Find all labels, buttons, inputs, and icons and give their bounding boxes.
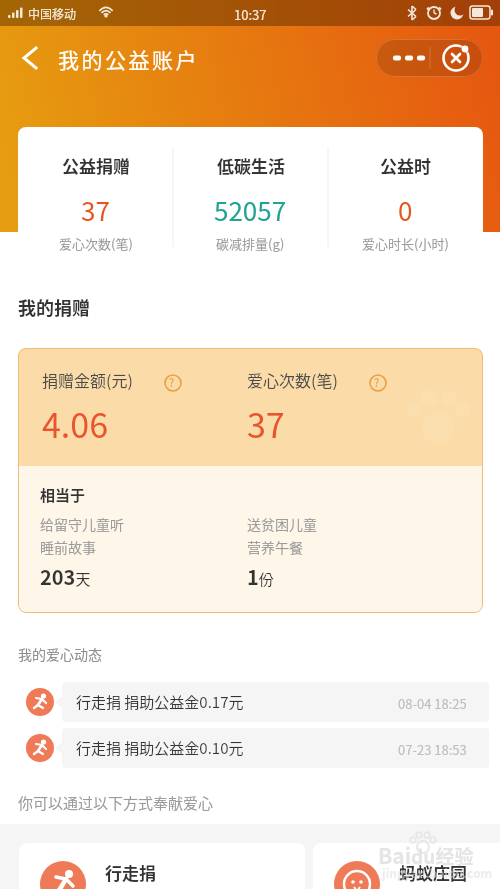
staticText: 低碳生活	[217, 153, 285, 178]
staticText: ?	[169, 374, 175, 390]
staticText: 爱心次数(笔)	[247, 368, 338, 391]
button[interactable]: 蚂蚁庄园	[313, 843, 500, 889]
staticText: 公益捐赠	[62, 153, 130, 178]
button[interactable]: 公益捐赠	[18, 127, 173, 263]
staticText: 行走捐 捐助公益金0.10元	[76, 737, 244, 759]
staticText: 爱心时长(小时)	[362, 234, 449, 253]
staticText: 碳减排量(g)	[216, 234, 285, 253]
staticText: 捐赠金额(元)	[42, 368, 133, 391]
button[interactable]	[376, 39, 483, 77]
staticText: 0	[398, 191, 413, 229]
staticText: 37	[247, 399, 285, 448]
staticText: 相当于	[40, 484, 86, 506]
staticText: 4.06	[42, 399, 109, 448]
staticText: Baidu经验	[378, 840, 474, 870]
staticText: 睡前故事	[40, 537, 96, 557]
staticText: ?	[374, 374, 380, 390]
button[interactable]: 行走捐	[19, 843, 305, 889]
staticText: 10:37	[234, 5, 267, 24]
staticText: 203天	[40, 562, 91, 591]
staticText: 送贫困儿童	[247, 514, 317, 534]
button[interactable]	[18, 46, 42, 70]
staticText: 08-04 18:25	[398, 694, 467, 713]
button[interactable]: 低碳生活	[173, 127, 328, 263]
staticText: 我的爱心动态	[18, 644, 102, 664]
staticText: 行走捐 捐助公益金0.17元	[76, 691, 244, 713]
staticText: 公益时	[380, 153, 431, 178]
staticText: 中国移动	[28, 5, 77, 22]
staticText: 07-23 18:53	[398, 740, 467, 759]
staticText: 37	[81, 191, 110, 229]
button[interactable]: 行走捐 捐助公益金0.17元	[0, 682, 500, 724]
staticText: 52057	[214, 191, 287, 229]
staticText: 我的捐赠	[18, 294, 90, 320]
staticText: 蚂蚁庄园	[399, 860, 467, 885]
staticText: 营养午餐	[247, 537, 303, 557]
staticText: 给留守儿童听	[40, 514, 124, 534]
staticText: 爱心次数(笔)	[59, 234, 133, 253]
button[interactable]: 公益时	[328, 127, 483, 263]
staticText: 你可以通过以下方式奉献爱心	[18, 792, 214, 814]
button[interactable]: 捐赠金额(元)	[18, 348, 483, 613]
staticText: 行走捐	[105, 860, 156, 885]
staticText: 我的公益账户	[58, 44, 199, 74]
staticText: jingyan.baidu.com	[382, 864, 493, 881]
button[interactable]: 行走捐 捐助公益金0.10元	[0, 728, 500, 770]
staticText: 1份	[247, 562, 274, 591]
